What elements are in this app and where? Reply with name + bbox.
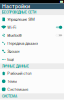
staticText: Передача данных	[7, 41, 38, 46]
staticText: Темы	[7, 79, 17, 84]
button[interactable]: Wi-Fi	[0, 23, 64, 31]
staticText: Bluetooth	[7, 33, 22, 38]
staticText: Управление SIM	[7, 17, 34, 22]
staticText: БЕСПРОВОДНЫЕ СЕТИ	[2, 10, 36, 14]
button[interactable]: Звонки	[0, 47, 64, 55]
button[interactable]: Bluetooth	[0, 31, 64, 39]
button[interactable]: Управление SIM	[0, 15, 64, 23]
staticText: Системные	[7, 87, 28, 92]
staticText: ▮▮▮	[60, 0, 63, 3]
staticText: Wi-Fi	[7, 25, 16, 30]
staticText: Ещё	[7, 57, 14, 62]
button[interactable]: Системные	[0, 85, 64, 93]
button[interactable]: Рабочий стол	[0, 69, 64, 77]
button[interactable]: Ещё	[0, 55, 64, 63]
staticText: ЛИЧНЫЕ ДАННЫЕ	[2, 64, 29, 68]
button[interactable]: Передача данных	[0, 39, 64, 47]
staticText: Рабочий стол	[7, 71, 31, 76]
staticText: Настройки	[2, 3, 30, 9]
staticText: Звонки	[7, 49, 19, 54]
staticText: СИСТЕМА	[2, 94, 17, 98]
button[interactable]: Темы	[0, 77, 64, 85]
